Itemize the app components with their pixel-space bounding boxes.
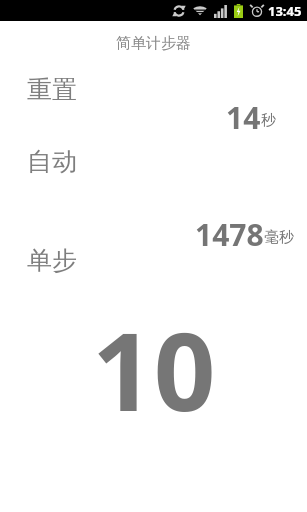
other: Wi-Fi bbox=[193, 4, 207, 18]
staticText: 秒 bbox=[261, 111, 276, 130]
other: Battery charging bbox=[234, 4, 243, 18]
staticText: 重置 bbox=[27, 74, 77, 105]
button[interactable]: 自动 bbox=[24, 144, 80, 179]
staticText: 14 bbox=[226, 97, 261, 138]
staticText: 13:45 bbox=[268, 2, 302, 20]
staticText: 简单计步器 bbox=[116, 34, 191, 53]
button[interactable]: 重置 bbox=[24, 72, 80, 107]
button[interactable]: 单步 bbox=[24, 243, 80, 278]
other: Signal bbox=[214, 5, 227, 18]
staticText: 10 bbox=[92, 296, 216, 443]
other: Sync bbox=[172, 4, 186, 18]
staticText: 毫秒 bbox=[264, 228, 294, 247]
staticText: 自动 bbox=[27, 146, 77, 177]
other: Alarm set bbox=[251, 5, 263, 17]
staticText: 单步 bbox=[27, 245, 77, 276]
staticText: 1478 bbox=[195, 214, 264, 255]
